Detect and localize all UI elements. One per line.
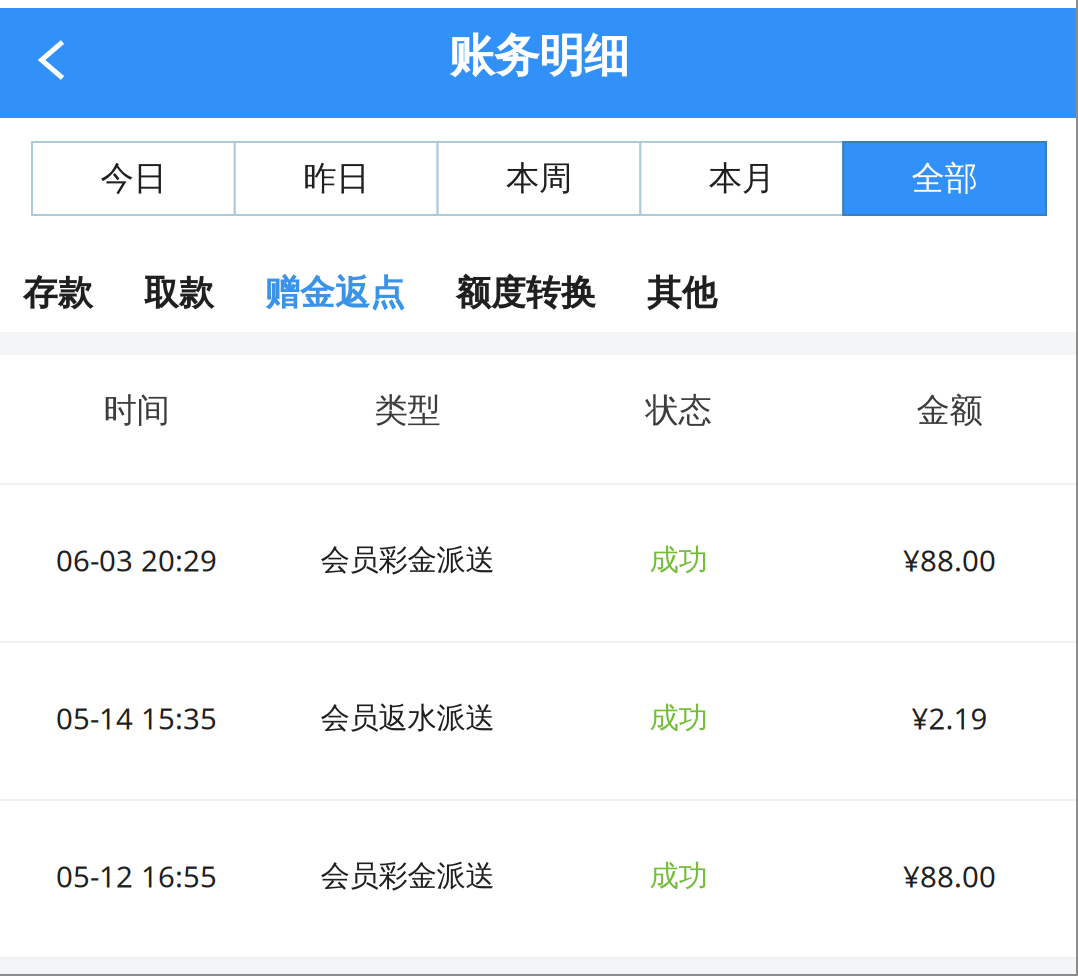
- staticText: 本周: [506, 158, 572, 199]
- button[interactable]: 今日: [32, 142, 235, 215]
- staticText: 本月: [709, 158, 775, 199]
- staticText: 05-12 16:55: [56, 856, 217, 895]
- staticText: 昨日: [303, 158, 369, 199]
- staticText: 状态: [645, 390, 711, 431]
- staticText: 成功: [649, 858, 707, 894]
- staticText: 会员返水派送: [320, 700, 494, 736]
- staticText: 金额: [916, 390, 982, 431]
- button[interactable]: 本周: [438, 142, 640, 215]
- staticText: 05-14 15:35: [56, 698, 217, 737]
- staticText: 赠金返点: [265, 272, 405, 314]
- staticText: 账务明细: [449, 28, 629, 84]
- button[interactable]: 05-12 16:55: [0, 801, 1078, 957]
- staticText: ¥88.00: [903, 856, 996, 895]
- button[interactable]: 存款: [23, 272, 93, 314]
- staticText: 时间: [103, 390, 169, 431]
- staticText: 06-03 20:29: [56, 540, 217, 579]
- staticText: 成功: [649, 700, 707, 736]
- button[interactable]: 取款: [144, 272, 214, 314]
- button[interactable]: 06-03 20:29: [0, 485, 1078, 641]
- button[interactable]: 其他: [647, 272, 717, 314]
- staticText: 全部: [912, 158, 978, 199]
- staticText: 会员彩金派送: [320, 542, 494, 578]
- staticText: 其他: [647, 272, 717, 314]
- button[interactable]: 05-14 15:35: [0, 643, 1078, 799]
- button[interactable]: 额度转换: [456, 272, 596, 314]
- button[interactable]: 全部: [843, 142, 1046, 215]
- button[interactable]: Back: [0, 8, 65, 118]
- staticText: 成功: [649, 542, 707, 578]
- staticText: 类型: [374, 390, 440, 431]
- staticText: 额度转换: [456, 272, 596, 314]
- staticText: 存款: [23, 272, 93, 314]
- staticText: ¥88.00: [903, 540, 996, 579]
- button[interactable]: 昨日: [235, 142, 438, 215]
- button[interactable]: 本月: [640, 142, 843, 215]
- staticText: ¥2.19: [911, 698, 987, 737]
- staticText: 会员彩金派送: [320, 858, 494, 894]
- button[interactable]: 赠金返点: [265, 272, 405, 314]
- staticText: 取款: [144, 272, 214, 314]
- staticText: 今日: [100, 158, 166, 199]
